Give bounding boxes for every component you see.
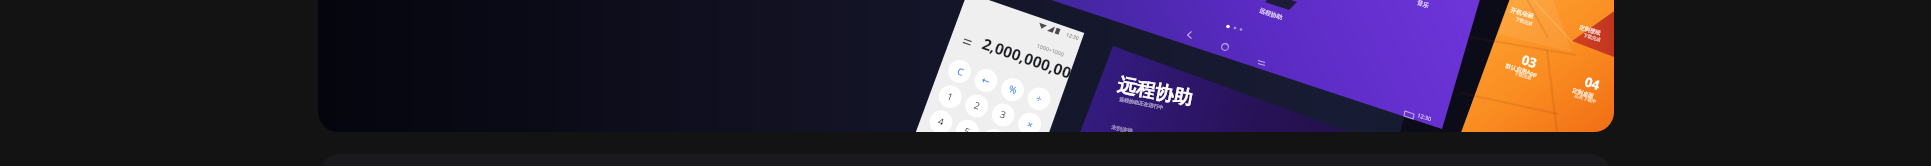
staticText: 远程协助	[1258, 6, 1284, 22]
staticText: 12:30	[1065, 31, 1080, 42]
staticText: 3	[998, 107, 1008, 122]
staticText: 下载完成	[1514, 16, 1533, 27]
staticText: 远程协助	[1115, 73, 1195, 111]
staticText: 音乐	[1416, 0, 1430, 10]
staticText: 1	[945, 89, 955, 104]
staticText: 定制壁纸	[1578, 24, 1602, 37]
staticText: 12:30	[1416, 111, 1433, 122]
staticText: C	[955, 64, 966, 79]
staticText: 定制桌面	[1571, 87, 1595, 100]
staticText: 5	[962, 124, 972, 132]
staticText: %	[1007, 82, 1019, 97]
staticText: 4	[936, 114, 946, 129]
staticText: 未到连接	[1110, 124, 1133, 132]
staticText: 1000÷1000	[1036, 42, 1065, 58]
staticText: 04	[1582, 72, 1602, 94]
button[interactable]: 12:30	[318, 0, 1614, 132]
staticText: 2,000,000,00	[979, 32, 1075, 83]
staticText: 默认启用App	[1504, 61, 1538, 79]
staticText: 2	[972, 98, 982, 113]
staticText: 开机动画	[1509, 6, 1535, 20]
staticText: 03	[1519, 50, 1539, 72]
staticText: ÷	[1034, 91, 1044, 106]
staticText: 远程协助正在进行中	[1119, 96, 1164, 110]
staticText: 正在下载中	[1573, 93, 1597, 105]
staticText: ←	[980, 74, 992, 87]
staticText: ×	[1025, 117, 1035, 132]
staticText: 下载完成	[1513, 70, 1532, 81]
staticText: 下载完成	[1582, 32, 1601, 43]
